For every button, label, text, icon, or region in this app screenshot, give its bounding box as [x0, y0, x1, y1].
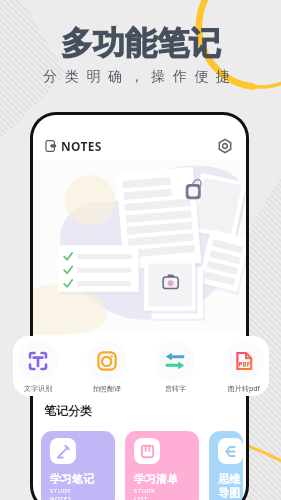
button[interactable]: 学习笔记 — [41, 431, 115, 500]
button[interactable]: 文字识别 — [18, 341, 58, 393]
staticText: 学习清单 — [134, 472, 178, 486]
button[interactable]: 音转字 — [155, 341, 195, 393]
staticText: STUDY — [134, 487, 156, 495]
staticText: NOTES — [61, 138, 102, 154]
staticText: 音转字 — [165, 384, 186, 393]
staticText: 思维导图 — [218, 472, 243, 500]
staticText: 拍照翻译 — [93, 384, 121, 393]
button[interactable]: 学习清单 — [125, 431, 199, 500]
staticText: LIST — [134, 495, 148, 500]
button[interactable]: 图片转pdf — [224, 341, 264, 394]
staticText: 学习笔记 — [50, 472, 94, 486]
button[interactable]: Notes — [45, 138, 102, 154]
button[interactable]: Settings — [216, 137, 234, 155]
button[interactable]: 拍照翻译 — [87, 341, 127, 393]
staticText: STUDY — [50, 487, 72, 495]
button[interactable]: 思维导图 — [209, 431, 243, 500]
staticText: 文字识别 — [24, 384, 52, 393]
staticText: 分类明确，操作便捷 — [43, 68, 238, 86]
staticText: NOTES — [50, 495, 72, 500]
staticText: 多功能笔记 — [61, 23, 221, 63]
staticText: 笔记分类 — [44, 403, 92, 418]
staticText: 图片转pdf — [228, 384, 261, 394]
